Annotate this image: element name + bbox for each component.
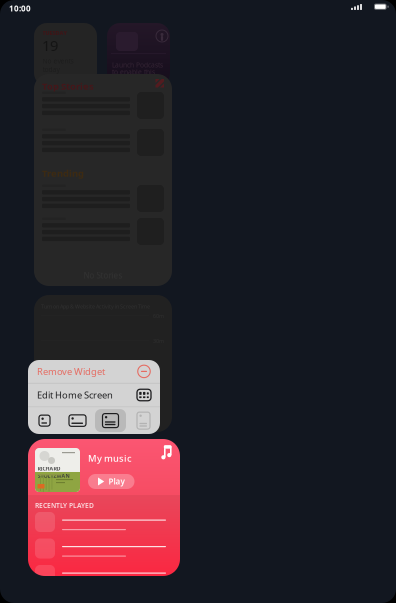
button[interactable]: Medium widget — [61, 407, 94, 434]
staticText: Trending — [42, 167, 84, 179]
staticText: TUESDAY — [42, 29, 67, 37]
staticText: RICHARD — [37, 465, 60, 472]
staticText: RECENTLY PLAYED — [35, 501, 94, 510]
staticText: STOLTZMAN — [37, 472, 69, 479]
staticText: My music — [88, 452, 132, 464]
button[interactable]: Large widget — [94, 407, 127, 434]
staticText: Play — [108, 476, 124, 487]
staticText: 10:00 — [9, 3, 31, 14]
button[interactable]: Play — [88, 474, 134, 489]
button[interactable]: Extra large widget — [127, 407, 160, 434]
staticText: Top Stories — [42, 80, 94, 92]
button[interactable]: Remove Widget — [28, 360, 160, 383]
staticText: Edit Home Screen — [37, 389, 113, 401]
button[interactable]: Edit Home Screen — [28, 383, 160, 406]
staticText: to enable this — [112, 67, 155, 76]
staticText: Remove Widget — [37, 365, 105, 378]
button[interactable]: Small widget — [28, 407, 61, 434]
staticText: 19 — [42, 35, 58, 55]
staticText: Launch Podcasts — [112, 60, 163, 69]
